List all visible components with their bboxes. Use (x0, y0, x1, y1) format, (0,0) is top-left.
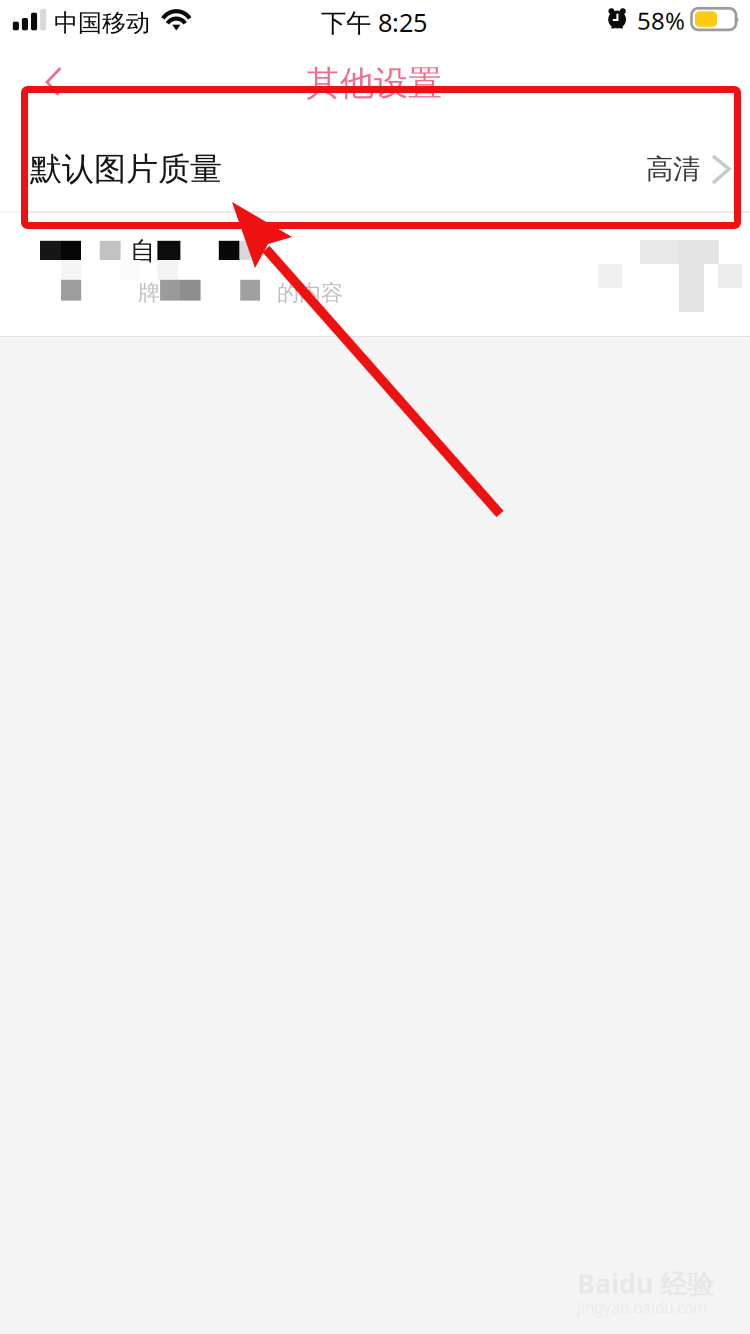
staticText: 默认图片质量 (30, 149, 222, 189)
staticText: 牌 (138, 279, 160, 307)
staticText: 高清 (646, 152, 700, 186)
button[interactable]: 自定义品牌内容 (0, 213, 750, 336)
staticText: 下午 8:25 (321, 5, 427, 39)
staticText: 自 (130, 235, 155, 267)
staticText: Baidu 经验 (577, 1265, 714, 1301)
staticText: jingyan.baidu.com (577, 1297, 707, 1318)
staticText: 中国移动 (54, 8, 150, 38)
staticText: 58% (637, 4, 685, 37)
staticText: 其他设置 (306, 62, 442, 105)
staticText: 的内容 (277, 279, 343, 307)
button[interactable]: 返回 (0, 44, 84, 100)
button[interactable]: 默认图片质量 (0, 100, 750, 211)
